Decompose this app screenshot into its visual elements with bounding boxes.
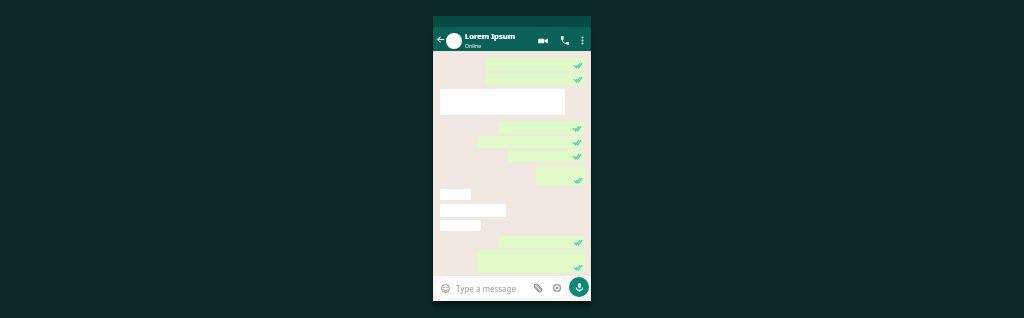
- button[interactable]: [477, 136, 584, 148]
- button[interactable]: [477, 250, 585, 273]
- button[interactable]: Call: [557, 33, 572, 48]
- button[interactable]: Camera: [551, 282, 563, 294]
- button[interactable]: Emoji: [440, 283, 450, 293]
- button[interactable]: [536, 166, 585, 186]
- button[interactable]: [499, 236, 585, 248]
- button[interactable]: Emoji: [436, 278, 567, 298]
- staticText: Online: [465, 42, 482, 49]
- button[interactable]: [486, 73, 585, 85]
- button[interactable]: Back: [434, 33, 446, 45]
- button[interactable]: Profile photo: [446, 33, 462, 49]
- staticText: Type a message: [456, 283, 517, 294]
- button[interactable]: [508, 150, 584, 162]
- button[interactable]: [499, 121, 584, 134]
- button[interactable]: [486, 58, 585, 71]
- button[interactable]: More options: [575, 33, 590, 48]
- button[interactable]: Attach: [532, 282, 544, 294]
- button[interactable]: Voice message: [569, 277, 589, 297]
- staticText: Lorem Ipsum: [465, 31, 516, 41]
- button[interactable]: Video call: [535, 33, 550, 48]
